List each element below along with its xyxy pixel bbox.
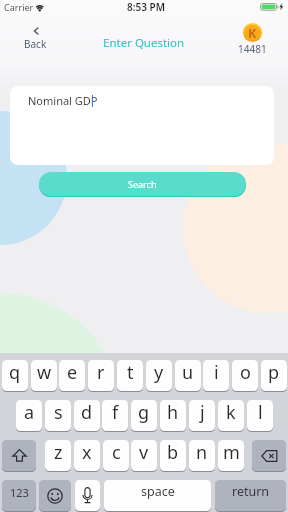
staticText: a	[24, 400, 35, 425]
button[interactable]: l	[247, 400, 273, 432]
staticText: f	[112, 400, 119, 425]
staticText: z	[54, 440, 63, 465]
staticText: o	[240, 360, 251, 385]
staticText: Carrier	[4, 1, 34, 13]
staticText: K	[248, 25, 257, 40]
button[interactable]: k	[218, 400, 244, 432]
button[interactable]: K	[235, 23, 269, 56]
button[interactable]: c	[103, 440, 129, 472]
staticText: v	[139, 440, 149, 465]
button[interactable]: u	[175, 360, 201, 392]
staticText: t	[127, 360, 134, 385]
button[interactable]: o	[232, 360, 258, 392]
staticText: s	[54, 400, 63, 425]
staticText: Nominal GDP	[28, 93, 98, 108]
staticText: x	[82, 440, 92, 465]
button[interactable]: m	[218, 440, 244, 472]
button[interactable]: y	[146, 360, 172, 392]
button[interactable]: p	[261, 360, 287, 392]
button[interactable]: n	[189, 440, 215, 472]
button[interactable]: a	[16, 400, 42, 432]
button[interactable]: s	[45, 400, 71, 432]
button[interactable]: Enter Question	[103, 35, 185, 51]
staticText: d	[81, 400, 93, 425]
staticText: 8:53 PM	[127, 0, 165, 14]
button[interactable]: q	[2, 360, 28, 392]
staticText: l	[258, 400, 263, 425]
staticText: m	[223, 440, 240, 465]
button[interactable]: return	[215, 480, 286, 512]
staticText: 14481	[238, 42, 267, 56]
staticText: space	[141, 483, 175, 500]
staticText: e	[67, 360, 78, 385]
button[interactable]	[39, 480, 71, 512]
button[interactable]: r	[88, 360, 114, 392]
staticText: w	[37, 360, 52, 385]
staticText: u	[182, 360, 194, 385]
staticText: Search	[128, 178, 157, 190]
staticText: i	[214, 360, 219, 385]
button[interactable]: w	[31, 360, 57, 392]
staticText: return	[232, 483, 270, 500]
button[interactable]: b	[160, 440, 186, 472]
button[interactable]	[2, 440, 36, 472]
staticText: g	[138, 400, 150, 425]
button[interactable]: Back	[22, 27, 49, 51]
staticText: h	[167, 400, 179, 425]
staticText: q	[9, 360, 21, 385]
button[interactable]: g	[131, 400, 157, 432]
staticText: Back	[24, 37, 47, 51]
button[interactable]: Nominal GDP	[10, 86, 274, 165]
staticText: k	[226, 400, 236, 425]
button[interactable]: space	[104, 480, 211, 512]
staticText: b	[167, 440, 179, 465]
staticText: 123	[10, 485, 29, 500]
button[interactable]: d	[74, 400, 100, 432]
button[interactable]	[75, 480, 100, 512]
staticText: p	[268, 360, 280, 385]
staticText: c	[112, 440, 121, 465]
button[interactable]: x	[74, 440, 100, 472]
staticText: r	[97, 360, 105, 385]
staticText: y	[154, 360, 164, 385]
button[interactable]: 123	[2, 480, 36, 512]
button[interactable]: i	[203, 360, 229, 392]
button[interactable]: e	[59, 360, 85, 392]
button[interactable]: v	[131, 440, 157, 472]
button[interactable]: f	[102, 400, 128, 432]
button[interactable]: j	[189, 400, 215, 432]
button[interactable]: z	[45, 440, 71, 472]
staticText: n	[196, 440, 208, 465]
button[interactable]: t	[117, 360, 143, 392]
button[interactable]: h	[160, 400, 186, 432]
button[interactable]	[252, 440, 286, 472]
staticText: j	[200, 400, 205, 425]
button[interactable]: Search	[39, 172, 246, 196]
